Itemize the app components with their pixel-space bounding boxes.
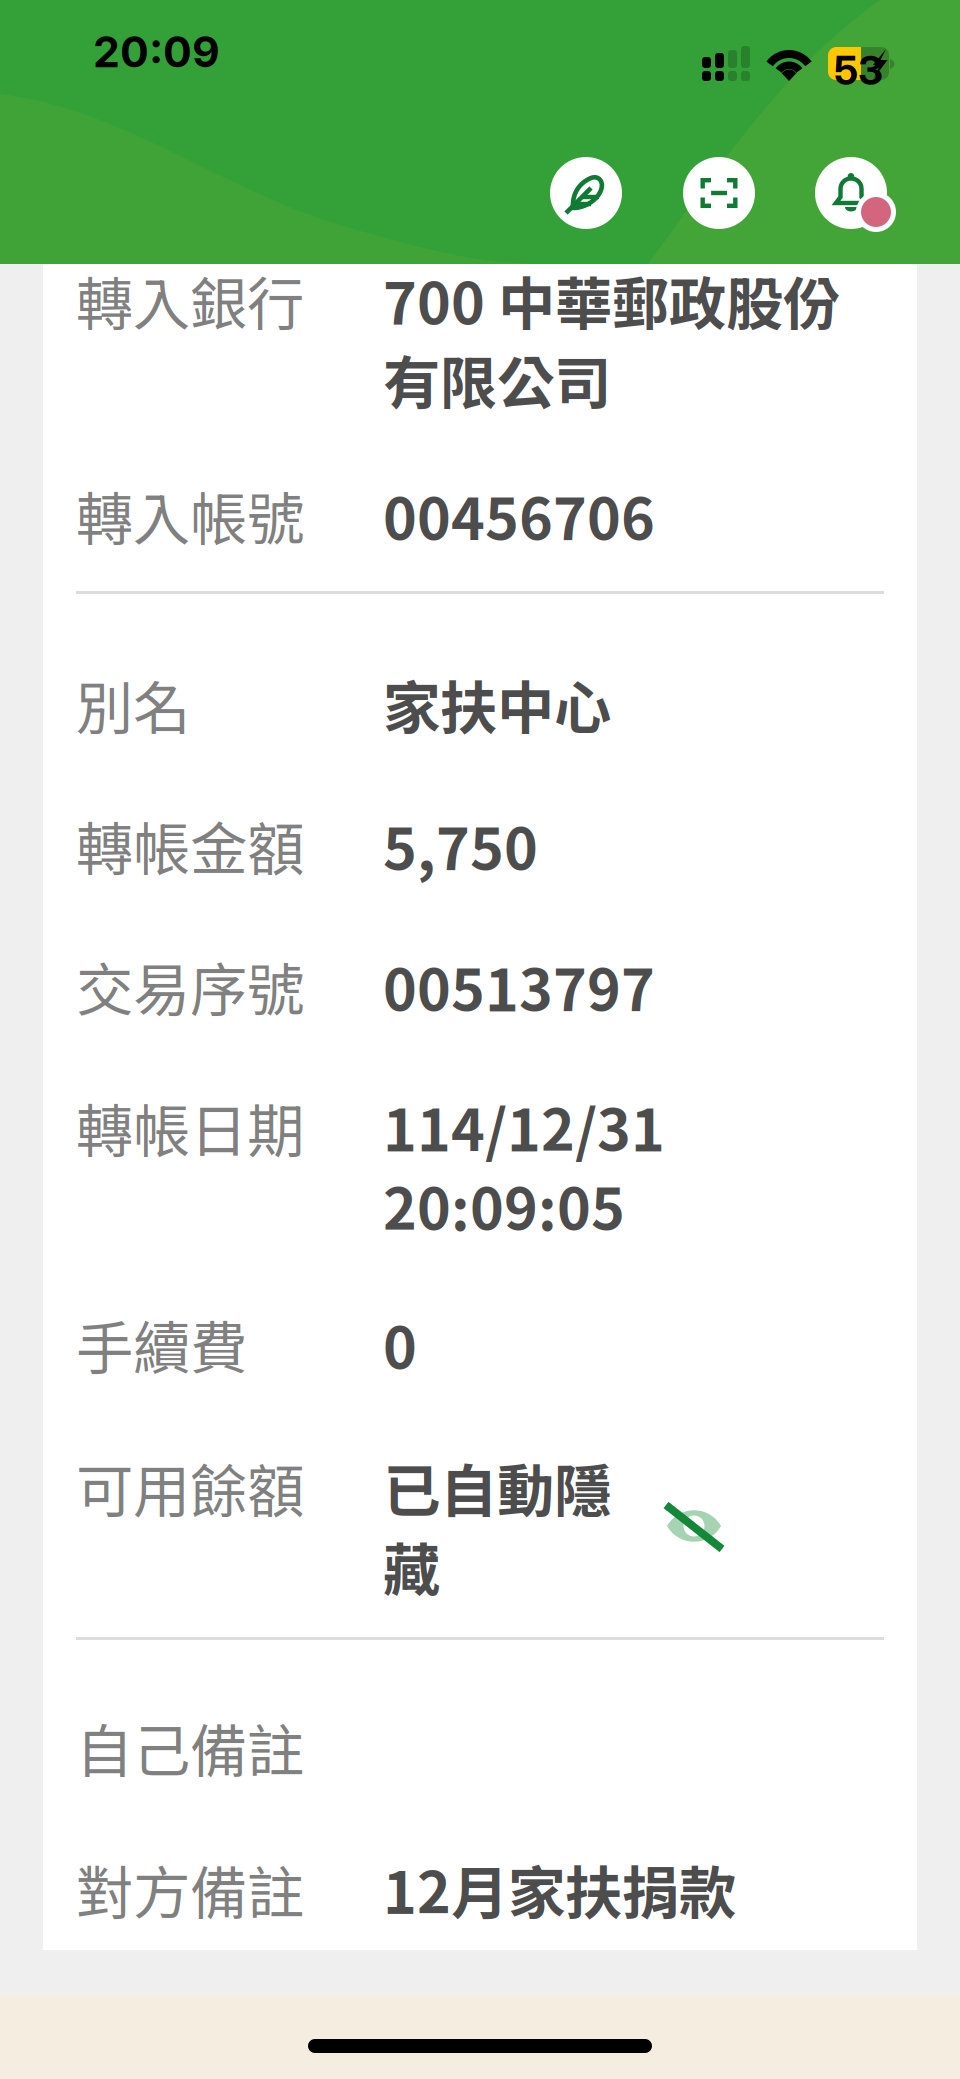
staticText: 交易序號 bbox=[76, 944, 304, 1027]
staticText: 12月家扶捐款 bbox=[383, 1847, 736, 1930]
staticText: 5,750 bbox=[383, 804, 538, 887]
staticText: 700 中華郵政股份 bbox=[383, 258, 840, 341]
staticText: 家扶中心 bbox=[383, 662, 611, 745]
staticText: 手續費 bbox=[76, 1302, 247, 1385]
staticText: 轉帳金額 bbox=[76, 803, 304, 886]
staticText: 53 bbox=[834, 46, 883, 94]
staticText: 對方備註 bbox=[76, 1847, 304, 1930]
button[interactable]: Compose bbox=[550, 157, 622, 229]
staticText: 20:09:05 bbox=[383, 1164, 625, 1247]
staticText: 114/12/31 bbox=[383, 1085, 665, 1168]
staticText: 有限公司 bbox=[383, 337, 611, 420]
staticText: 藏 bbox=[383, 1524, 440, 1607]
staticText: 轉入銀行 bbox=[76, 258, 304, 341]
staticText: 轉帳日期 bbox=[76, 1085, 304, 1168]
staticText: 自己備註 bbox=[76, 1705, 304, 1788]
button[interactable]: Scan QR code bbox=[683, 157, 755, 229]
staticText: 20:09 bbox=[93, 26, 220, 78]
staticText: 00456706 bbox=[383, 474, 655, 557]
staticText: 00513797 bbox=[383, 945, 655, 1028]
button[interactable]: Notifications bbox=[815, 157, 911, 253]
staticText: 已自動隱 bbox=[383, 1445, 611, 1528]
staticText: 可用餘額 bbox=[76, 1445, 304, 1528]
staticText: 轉入帳號 bbox=[76, 473, 304, 556]
staticText: 別名 bbox=[76, 662, 190, 745]
staticText: 0 bbox=[383, 1303, 417, 1386]
